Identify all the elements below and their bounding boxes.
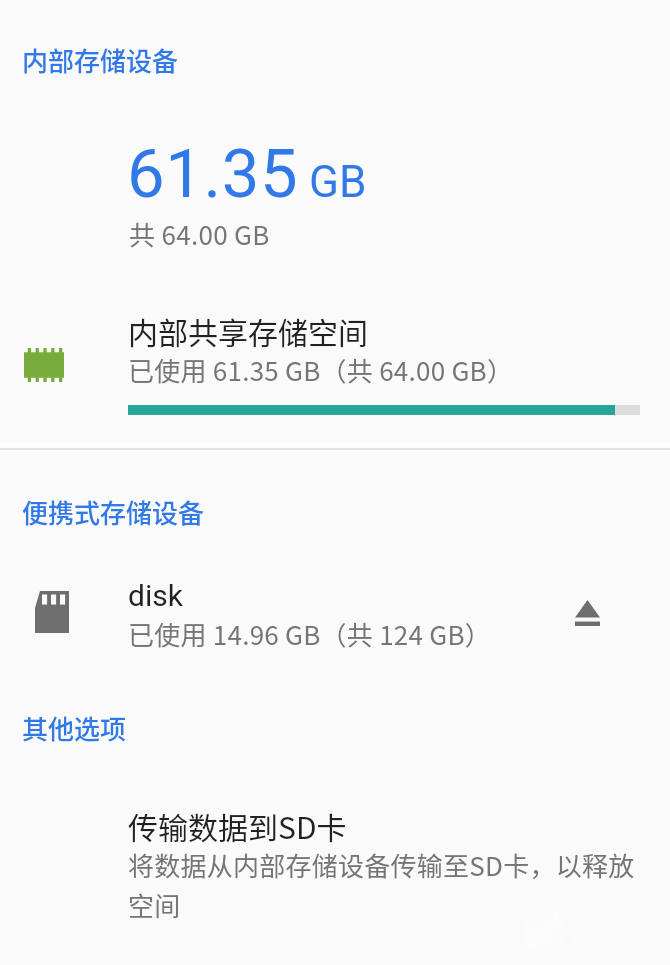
button[interactable]: 传输数据到SD卡 bbox=[0, 790, 670, 940]
staticText: disk bbox=[128, 578, 183, 613]
button[interactable]: 其他选项 bbox=[22, 709, 127, 747]
staticText: 内部共享存储空间 bbox=[128, 309, 368, 352]
button[interactable]: 内部存储设备 bbox=[22, 41, 179, 79]
button[interactable]: Eject disk bbox=[551, 577, 623, 649]
staticText: 已使用 61.35 GB（共 64.00 GB） bbox=[128, 351, 514, 389]
button[interactable]: 便携式存储设备 bbox=[22, 493, 205, 531]
staticText: 已使用 14.96 GB（共 124 GB） bbox=[128, 615, 492, 653]
button[interactable]: disk bbox=[0, 565, 670, 655]
staticText: 传输数据到SD卡 bbox=[128, 804, 347, 847]
staticText: 将数据从内部存储设备传输至SD卡，以释放空间 bbox=[128, 846, 636, 924]
button[interactable]: 内部共享存储空间 bbox=[0, 300, 670, 425]
staticText: 其他选项 bbox=[22, 709, 127, 747]
staticText: 共 64.00 GB bbox=[129, 215, 270, 253]
staticText: 61.35 bbox=[127, 135, 299, 214]
staticText: GB bbox=[309, 156, 367, 208]
staticText: 内部存储设备 bbox=[22, 41, 179, 79]
staticText: 便携式存储设备 bbox=[22, 493, 205, 531]
